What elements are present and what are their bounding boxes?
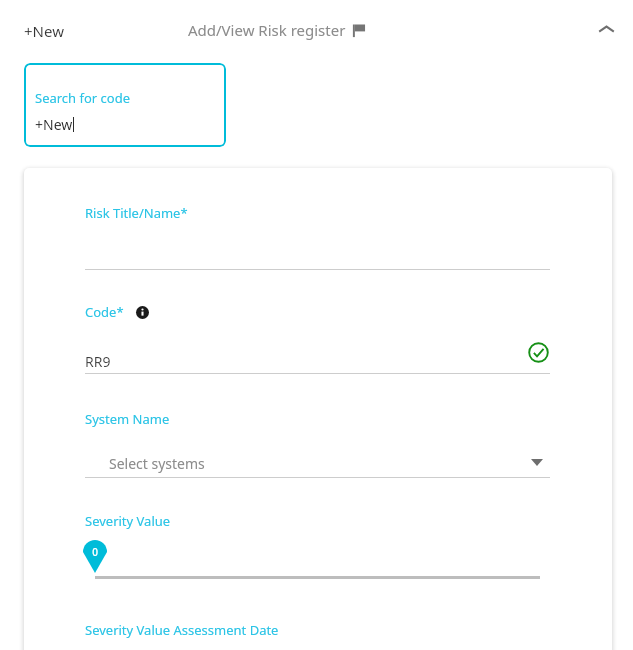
button[interactable]: Severity value slider, 0: [83, 540, 107, 573]
button[interactable]: Search for code: [24, 63, 226, 147]
button[interactable]: Select systems: [85, 446, 550, 478]
staticText: Add/View Risk register: [188, 20, 346, 40]
button[interactable]: Add/View Risk register: [186, 17, 369, 43]
other: Open systems dropdown: [531, 459, 543, 466]
staticText: RR9: [85, 352, 111, 371]
other: Flag: [352, 23, 367, 38]
staticText: +New: [24, 21, 64, 41]
staticText: +New: [35, 115, 73, 134]
other: Code valid: [528, 342, 549, 363]
button[interactable]: Code information: [136, 306, 149, 319]
staticText: Search for code: [35, 89, 131, 107]
staticText: Severity Value: [85, 512, 171, 530]
staticText: Code*: [85, 303, 124, 321]
button[interactable]: Collapse section: [589, 12, 623, 46]
staticText: Risk Title/Name*: [85, 204, 188, 222]
staticText: Select systems: [109, 454, 205, 473]
button[interactable]: +New: [20, 18, 68, 44]
staticText: Severity Value Assessment Date: [85, 621, 279, 639]
staticText: 0: [92, 545, 98, 559]
staticText: System Name: [85, 410, 170, 428]
